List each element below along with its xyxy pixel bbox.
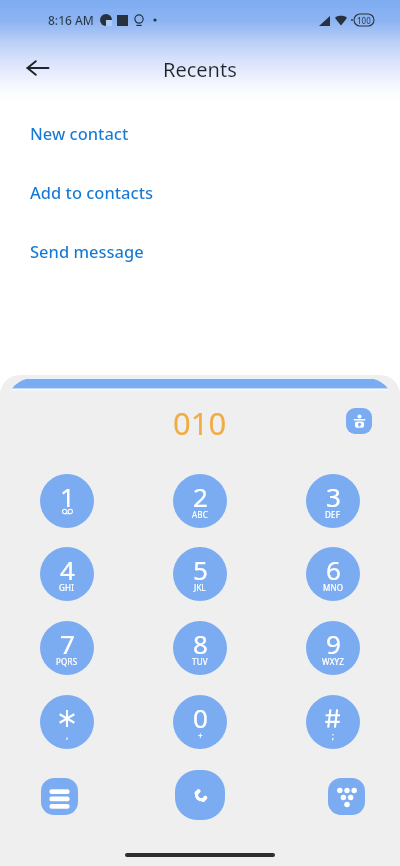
staticText: New contact (30, 122, 129, 144)
staticText: TUV (192, 656, 208, 667)
button[interactable]: 9 (306, 621, 360, 675)
button[interactable]: 2 (173, 474, 227, 528)
staticText: 6 (326, 552, 341, 587)
button[interactable]: 3 (306, 474, 360, 528)
staticText: GHI (59, 582, 75, 593)
button[interactable]: 5 (173, 547, 227, 601)
button[interactable]: Save contact (346, 408, 372, 434)
button[interactable]: Add to contacts (0, 170, 400, 214)
staticText: 7 (60, 626, 75, 661)
button[interactable]: New contact (0, 111, 400, 155)
button[interactable]: 7 (40, 621, 94, 675)
staticText: 8 (193, 626, 208, 661)
staticText: 0 (193, 700, 208, 735)
staticText: MNO (323, 582, 344, 593)
button[interactable]: Call log (41, 778, 78, 815)
staticText: 5 (193, 552, 208, 587)
staticText: 4 (60, 552, 75, 587)
staticText: JKL (194, 582, 206, 593)
staticText: 9 (326, 626, 341, 661)
button[interactable]: Back (18, 48, 58, 88)
staticText: , (66, 730, 69, 741)
staticText: Send message (30, 240, 144, 262)
staticText: PQRS (56, 656, 78, 667)
staticText: 8:16 AM (48, 12, 94, 28)
button[interactable]: 0 (173, 695, 227, 749)
staticText: 3 (326, 479, 341, 514)
button[interactable]: Dialpad (328, 778, 365, 815)
button[interactable]: , (40, 695, 94, 749)
staticText: WXYZ (322, 656, 345, 667)
staticText: 1 (60, 479, 75, 514)
button[interactable]: 1 (40, 474, 94, 528)
staticText: 100 (357, 15, 371, 26)
button[interactable]: Call (175, 770, 225, 820)
button[interactable]: 8 (173, 621, 227, 675)
staticText: + (198, 730, 203, 741)
button[interactable]: ; (306, 695, 360, 749)
staticText: DEF (325, 509, 341, 520)
staticText: ABC (192, 509, 208, 520)
button[interactable]: 4 (40, 547, 94, 601)
staticText: 010 (173, 402, 227, 444)
staticText: 2 (193, 479, 208, 514)
button[interactable]: Send message (0, 229, 400, 273)
staticText: ; (332, 730, 335, 741)
staticText: Recents (163, 56, 237, 83)
button[interactable]: 6 (306, 547, 360, 601)
staticText: Add to contacts (30, 181, 153, 203)
